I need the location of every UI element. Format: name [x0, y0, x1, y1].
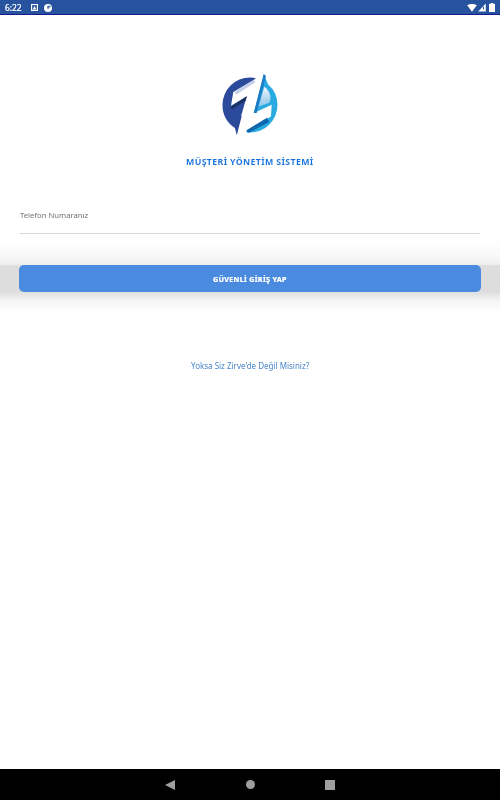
staticText: MÜŞTERİ YÖNETİM SİSTEMİ: [186, 156, 314, 168]
button[interactable]: GÜVENLİ GİRİŞ YAP: [19, 265, 481, 292]
button[interactable]: Home: [220, 769, 280, 800]
staticText: 6:22: [5, 2, 22, 13]
staticText: GÜVENLİ GİRİŞ YAP: [213, 274, 287, 284]
button[interactable]: Back: [140, 769, 200, 800]
staticText: Telefon Numaranız: [20, 210, 89, 220]
button[interactable]: Yoksa Siz Zirve'de Değil Misiniz?: [0, 360, 500, 371]
staticText: Yoksa Siz Zirve'de Değil Misiniz?: [191, 360, 310, 371]
button[interactable]: Recents: [300, 769, 360, 800]
